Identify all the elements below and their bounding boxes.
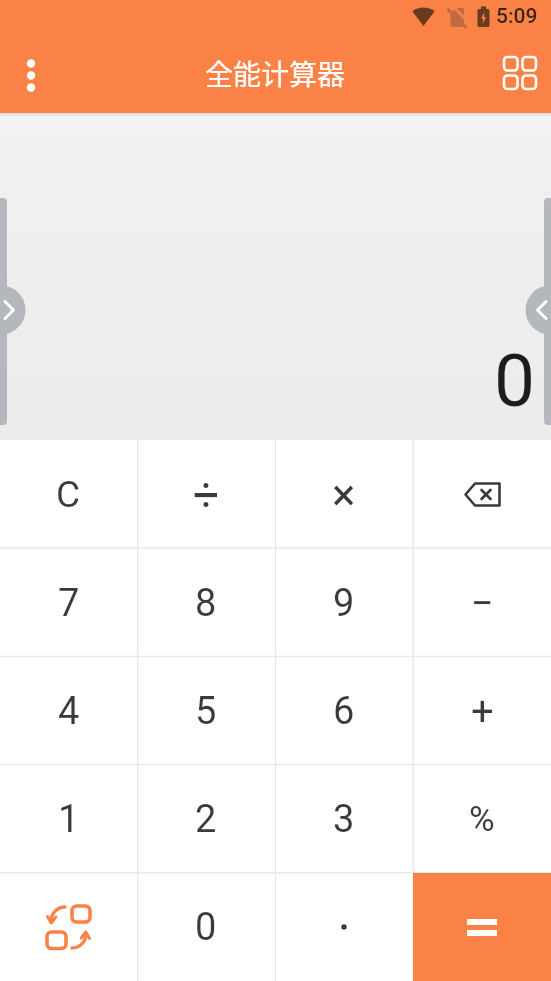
button[interactable]	[413, 873, 551, 981]
button[interactable]: 5	[137, 657, 275, 765]
button[interactable]: %	[413, 765, 551, 873]
staticText: 6	[333, 689, 355, 734]
staticText: 4	[58, 689, 80, 734]
staticText: 5	[195, 689, 217, 734]
button[interactable]: 6	[275, 657, 413, 765]
staticText: 1	[58, 797, 80, 842]
staticText: 0	[195, 905, 217, 950]
staticText: 3	[333, 797, 355, 842]
button[interactable]: 1	[0, 765, 137, 873]
button[interactable]: 0	[137, 873, 275, 981]
button[interactable]: −	[413, 549, 551, 657]
button[interactable]	[498, 51, 542, 95]
staticText: 9	[333, 581, 355, 626]
button[interactable]: +	[413, 657, 551, 765]
button[interactable]: 7	[0, 549, 137, 657]
button[interactable]: 8	[137, 549, 275, 657]
button[interactable]: 2	[137, 765, 275, 873]
button[interactable]: C	[0, 440, 137, 549]
button[interactable]	[413, 440, 551, 549]
staticText: C	[56, 473, 81, 516]
staticText: 2	[195, 797, 217, 842]
button[interactable]: 9	[275, 549, 413, 657]
staticText: 0	[494, 338, 536, 424]
staticText: 8	[195, 581, 217, 626]
button[interactable]: 4	[0, 657, 137, 765]
button[interactable]	[275, 873, 413, 981]
button[interactable]	[0, 873, 137, 981]
button[interactable]: 3	[275, 765, 413, 873]
button[interactable]: ×	[275, 440, 413, 549]
button[interactable]: ÷	[137, 440, 275, 549]
staticText: 全能计算器	[205, 53, 346, 94]
button[interactable]	[14, 51, 48, 95]
staticText: +	[471, 688, 494, 735]
staticText: ÷	[193, 468, 220, 522]
staticText: ×	[332, 469, 356, 521]
staticText: −	[471, 580, 494, 627]
staticText: 7	[58, 581, 80, 626]
staticText: 5:09	[496, 4, 538, 29]
staticText: %	[469, 799, 495, 840]
